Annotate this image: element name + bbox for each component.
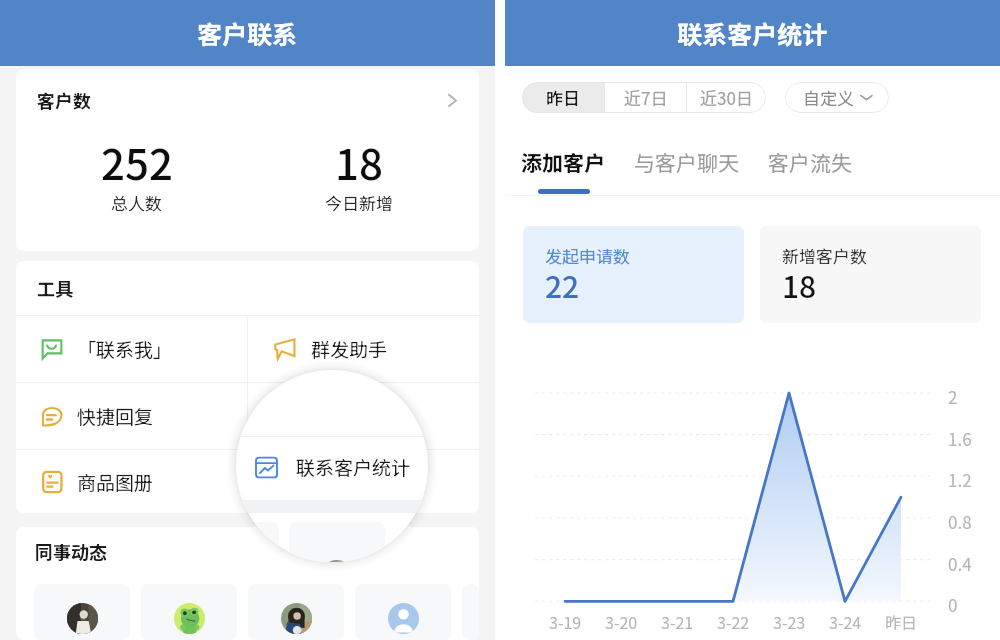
button[interactable]: 近7日 [605,82,686,113]
staticText: 3-22 [717,610,750,633]
staticText: 客户数 [37,87,91,113]
button[interactable]: 快捷回复 [41,383,247,449]
button[interactable] [274,450,479,513]
staticText: 18 [335,131,383,192]
staticText: 3-19 [549,610,582,633]
staticText: 0.4 [948,551,972,576]
staticText: 总人数 [111,190,162,215]
staticText: 工具 [37,275,73,301]
staticText: 近7日 [624,85,668,110]
staticText: 昨日 [885,610,918,633]
staticText: 今日新增 [325,190,393,215]
staticText: 发起申请数 [545,243,630,268]
button[interactable]: 客户流失 [768,142,852,182]
staticText: 22 [545,263,580,306]
staticText: 2 [948,384,958,409]
button[interactable]: 添加客户 [521,142,634,182]
staticText: 客户流失 [768,147,852,177]
button[interactable]: 客户数 [16,69,479,251]
staticText: 3-20 [605,610,638,633]
staticText: 3-21 [661,610,694,633]
staticText: 近30日 [700,85,753,110]
staticText: 0.8 [948,509,972,534]
button[interactable]: 群发助手 [274,316,479,382]
button[interactable]: 昨日 [522,82,604,113]
button[interactable]: 发起申请数 [545,243,744,323]
staticText: 0 [948,592,958,617]
staticText: 同事动态 [35,538,107,564]
button[interactable]: 联系客户统计 [255,449,415,485]
staticText: 3-23 [773,610,806,633]
staticText: 与客户聊天 [634,147,739,177]
button[interactable]: Colleague moment 2 [141,584,237,640]
staticText: 商品图册 [77,468,154,496]
button[interactable]: 「联系我」 [41,316,247,382]
button[interactable] [274,383,479,449]
button[interactable]: 近30日 [687,82,766,113]
staticText: 添加客户 [521,147,605,177]
staticText: 18 [782,263,817,306]
button[interactable]: Colleague moment 1 [34,584,130,640]
staticText: 联系客户统计 [296,453,411,481]
button[interactable]: 商品图册 [41,450,247,513]
staticText: 新增客户数 [782,243,867,268]
button[interactable]: Colleague moment 3 [248,584,344,640]
staticText: 昨日 [546,85,580,110]
staticText: 「联系我」 [77,335,173,363]
button[interactable]: 自定义 [785,82,889,113]
button[interactable]: Colleague moment 4 [355,584,451,640]
staticText: 快捷回复 [77,402,154,430]
staticText: 3-24 [829,610,862,633]
staticText: 自定义 [803,85,854,110]
staticText: 252 [101,131,173,192]
staticText: 客户联系 [197,15,298,51]
button[interactable]: 与客户聊天 [634,142,768,182]
staticText: 群发助手 [311,335,388,363]
staticText: 1.6 [948,426,972,451]
staticText: 1.2 [948,467,972,492]
staticText: 联系客户统计 [677,15,828,51]
button[interactable]: 新增客户数 [782,243,981,323]
